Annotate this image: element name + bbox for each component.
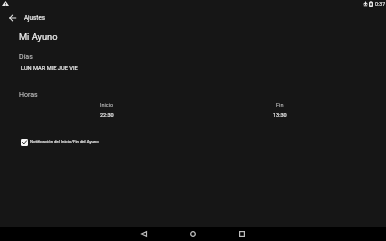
- staticText: Notificación del Inicio/Fin del Ayuno: [30, 139, 99, 144]
- button[interactable]: Inicio: [86, 102, 127, 118]
- button[interactable]: Home: [184, 227, 202, 241]
- staticText: Días: [19, 53, 33, 61]
- staticText: Fin: [276, 102, 284, 108]
- staticText: Horas: [19, 91, 38, 99]
- staticText: Ajustes: [24, 14, 45, 21]
- staticText: 13:30: [273, 112, 287, 118]
- staticText: Inicio: [100, 102, 114, 108]
- staticText: LUN MAR MIE JUE VIE: [21, 65, 78, 72]
- button[interactable]: Back: [4, 10, 20, 25]
- button[interactable]: Back: [135, 227, 153, 241]
- button[interactable]: Notificación del Inicio/Fin del Ayuno: [21, 136, 99, 148]
- staticText: Mi Ayuno: [19, 31, 58, 42]
- staticText: 22:30: [100, 112, 114, 118]
- button[interactable]: Recents: [233, 227, 251, 241]
- button[interactable]: Fin: [259, 102, 300, 118]
- staticText: 0:37: [375, 1, 386, 7]
